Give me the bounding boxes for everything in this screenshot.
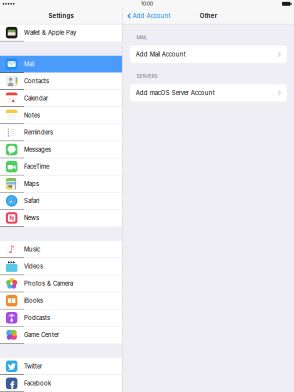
staticText: Add macOS Server Account	[136, 89, 215, 96]
button[interactable]: Messages	[0, 141, 122, 158]
button[interactable]: Twitter	[0, 358, 122, 375]
staticText: iBooks	[24, 297, 43, 304]
button[interactable]: Photos & Camera	[0, 275, 122, 292]
staticText: Reminders	[24, 129, 53, 136]
button[interactable]: Notes	[0, 107, 122, 124]
button[interactable]: FaceTime	[0, 158, 122, 175]
button[interactable]: Add Mail Account	[123, 46, 294, 63]
staticText: Game Center	[24, 331, 59, 338]
staticText: Safari	[24, 197, 39, 204]
staticText: Add Account	[132, 12, 170, 20]
staticText: News	[24, 214, 39, 222]
staticText: Mail	[24, 60, 34, 68]
button[interactable]: Reminders	[0, 124, 122, 141]
button[interactable]: Contacts	[0, 73, 122, 90]
button[interactable]: Safari	[0, 192, 122, 210]
staticText: Podcasts	[24, 314, 50, 321]
staticText: SERVERS	[136, 73, 157, 79]
button[interactable]: Add Account	[123, 10, 170, 22]
staticText: Notes	[24, 112, 40, 119]
staticText: ♪	[8, 243, 15, 255]
button[interactable]: Maps	[0, 175, 122, 192]
button[interactable]: Podcasts	[0, 309, 122, 326]
button[interactable]: Facebook	[0, 375, 122, 392]
staticText: Settings	[48, 12, 73, 20]
button[interactable]: ♪	[0, 241, 122, 258]
button[interactable]: Mail	[0, 56, 122, 73]
button[interactable]: Videos	[0, 258, 122, 275]
button[interactable]: Wallet & Apple Pay	[0, 24, 122, 41]
button[interactable]: iBooks	[0, 292, 122, 309]
staticText: Add Mail Account	[136, 51, 186, 58]
staticText: Calendar	[24, 95, 48, 102]
staticText: Music	[24, 246, 40, 253]
button[interactable]: Game Center	[0, 326, 122, 344]
button[interactable]: Calendar	[0, 90, 122, 107]
staticText: Wallet & Apple Pay	[24, 29, 76, 36]
staticText: Photos & Camera	[24, 280, 73, 287]
staticText: Videos	[24, 263, 43, 270]
staticText: Twitter	[24, 363, 42, 370]
staticText: 10:00	[141, 1, 153, 7]
staticText: Other	[200, 12, 217, 20]
staticText: Facebook	[24, 380, 51, 387]
staticText: Contacts	[24, 78, 49, 85]
staticText: Maps	[24, 180, 39, 187]
staticText: FaceTime	[24, 163, 49, 170]
button[interactable]: Add macOS Server Account	[123, 84, 294, 101]
staticText: Messages	[24, 146, 51, 153]
button[interactable]: News	[0, 210, 122, 227]
staticText: MAIL	[136, 35, 147, 40]
